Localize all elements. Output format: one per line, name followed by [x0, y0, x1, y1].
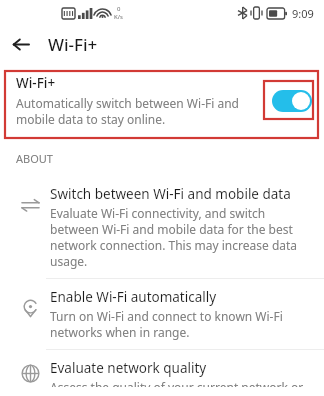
other: Evaluate network quality	[14, 359, 46, 387]
staticText: Evaluate network quality	[50, 359, 207, 377]
button[interactable]: Wi-Fi+	[0, 66, 324, 137]
staticText: Switch between Wi-Fi and mobile data	[50, 185, 291, 203]
staticText: Wi-Fi+	[16, 74, 56, 92]
button[interactable]: Switch between Wi-Fi and mobile data	[0, 176, 324, 278]
button[interactable]: Evaluate network quality	[0, 350, 324, 396]
button[interactable]: Wi-Fi+ toggle	[272, 90, 312, 112]
staticText: Wi-Fi+	[48, 33, 98, 56]
button[interactable]: Back	[0, 26, 40, 62]
staticText: Automatically switch between Wi-Fi and m…	[16, 95, 262, 127]
staticText: Turn on Wi-Fi and connect to known Wi-Fi…	[50, 308, 308, 340]
staticText: Assess the quality of your current netwo…	[50, 379, 308, 387]
button[interactable]: Enable Wi-Fi automatically	[0, 279, 324, 349]
staticText: Evaluate Wi-Fi connectivity, and switch …	[50, 205, 308, 269]
staticText: K/s	[114, 13, 123, 21]
other: Switch between Wi-Fi and mobile data	[14, 185, 46, 225]
staticText: Enable Wi-Fi automatically	[50, 288, 217, 306]
other: Enable Wi-Fi automatically	[14, 288, 46, 328]
staticText: ABOUT	[16, 151, 53, 166]
staticText: 0	[117, 5, 121, 13]
staticText: 9:09	[292, 6, 314, 21]
